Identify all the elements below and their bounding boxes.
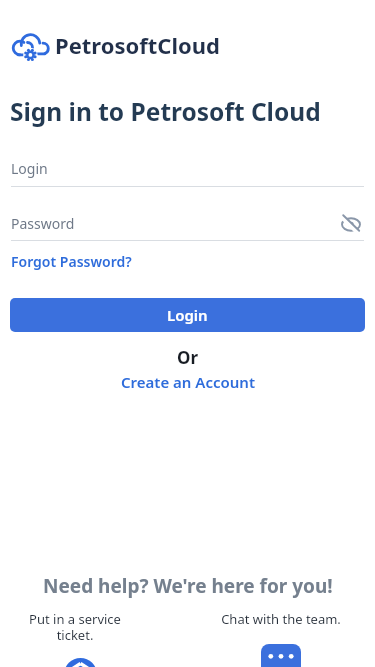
button[interactable] — [60, 655, 102, 667]
staticText: Or — [177, 346, 199, 369]
staticText: Sign in to Petrosoft Cloud — [10, 95, 321, 128]
button[interactable] — [338, 213, 364, 235]
button[interactable]: Put in a service ticket. — [14, 610, 136, 643]
staticText: Login — [11, 159, 48, 178]
button[interactable]: Login — [10, 298, 365, 332]
button[interactable]: Chat with the team. — [220, 610, 342, 628]
staticText: Create an Account — [121, 372, 255, 392]
staticText: Chat with the team. — [221, 610, 341, 628]
staticText: PetrosoftCloud — [55, 30, 220, 60]
staticText: Login — [167, 305, 208, 325]
staticText: Password — [11, 214, 75, 233]
staticText: Need help? We're here for you! — [43, 573, 333, 599]
button[interactable]: Create an Account — [121, 372, 255, 392]
button[interactable]: Forgot Password? — [11, 252, 132, 271]
staticText: Put in a service ticket. — [29, 610, 121, 643]
button[interactable] — [261, 644, 301, 667]
staticText: Forgot Password? — [11, 252, 132, 271]
